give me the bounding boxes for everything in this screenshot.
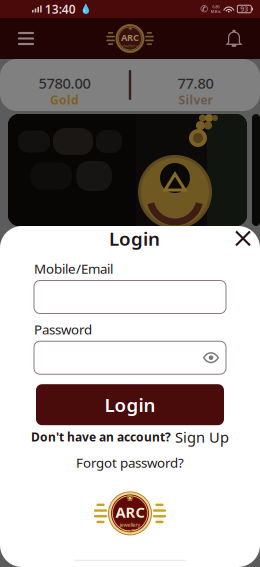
staticText: 5780.00 xyxy=(38,73,90,93)
staticText: 💧 xyxy=(80,4,92,14)
staticText: MB/s xyxy=(211,9,221,14)
staticText: ARC xyxy=(115,502,144,522)
staticText: ARC xyxy=(121,31,139,43)
staticText: Login xyxy=(109,226,160,251)
button[interactable]: Forgot password? xyxy=(76,454,184,471)
staticText: jewellery xyxy=(119,521,140,528)
staticText: 13:40 xyxy=(45,1,76,17)
staticText: since 1947 xyxy=(122,48,138,52)
staticText: 77.80 xyxy=(178,73,214,93)
staticText: Gold xyxy=(50,92,79,108)
staticText: Forgot password? xyxy=(76,454,184,471)
staticText: Mobile/Email xyxy=(34,260,113,277)
staticText: Login xyxy=(104,392,155,417)
staticText: ❀ xyxy=(126,494,133,503)
staticText: Sign Up xyxy=(175,427,229,447)
staticText: jewellery xyxy=(122,43,138,48)
staticText: Don't have an account? xyxy=(31,429,171,445)
button[interactable]: Close xyxy=(231,226,255,250)
staticText: 93 xyxy=(240,5,248,13)
staticText: Password xyxy=(34,320,92,338)
button[interactable]: Menu xyxy=(7,19,45,57)
button[interactable]: Notifications xyxy=(215,19,253,57)
staticText: ❀ xyxy=(128,25,132,31)
staticText: ✆ xyxy=(200,4,208,14)
button[interactable]: Login xyxy=(36,384,224,425)
button[interactable]: Show password xyxy=(196,346,226,370)
staticText: 6.80 xyxy=(212,4,219,9)
staticText: Silver xyxy=(179,92,213,108)
staticText: since 1947 xyxy=(121,528,139,533)
button[interactable]: Don't have an account? xyxy=(31,427,229,447)
